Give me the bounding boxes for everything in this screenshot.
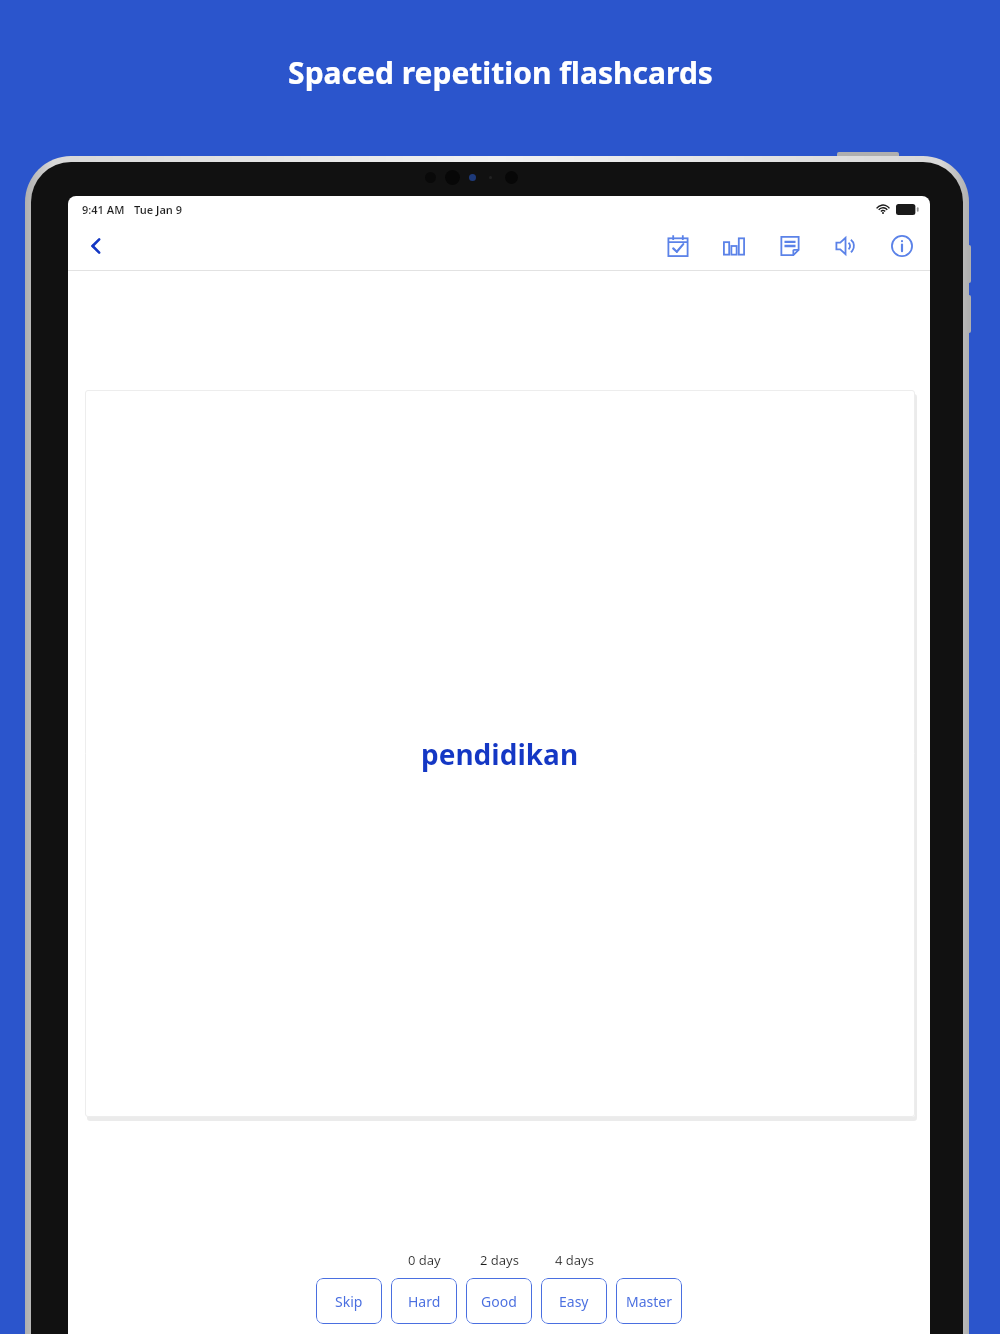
button[interactable]: Skip [316,1278,382,1324]
button[interactable]: Info [884,228,920,264]
button[interactable]: Back [74,224,118,268]
staticText: Skip [335,1292,363,1311]
button[interactable]: Good [466,1278,532,1324]
button[interactable]: Hard [391,1278,457,1324]
staticText: 9:41 AM [82,202,125,217]
staticText: Good [481,1292,517,1311]
button[interactable]: Master [616,1278,682,1324]
staticText: Spaced repetition flashcards [288,52,713,93]
staticText: pendidikan [421,735,579,773]
staticText: Tue Jan 9 [134,202,183,217]
staticText: 2 days [480,1251,519,1269]
staticText: Hard [408,1292,441,1311]
button[interactable]: Notes [772,228,808,264]
staticText: 0 day [408,1251,441,1269]
staticText: 4 days [555,1251,594,1269]
button[interactable]: pendidikan [85,390,915,1117]
button[interactable]: Easy [541,1278,607,1324]
button[interactable]: Statistics [716,228,752,264]
staticText: Easy [559,1292,589,1311]
button[interactable]: Pronounce [828,228,864,264]
staticText: Master [626,1292,672,1311]
button[interactable]: Schedule [660,228,696,264]
